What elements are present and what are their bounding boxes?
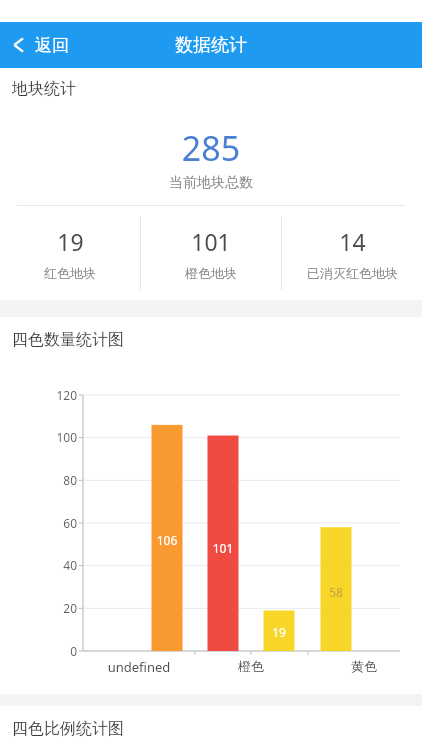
button[interactable]: 101 xyxy=(141,206,281,300)
staticText: 40 xyxy=(0,557,77,573)
button[interactable]: 14 xyxy=(282,206,422,300)
staticText: 地块统计 xyxy=(12,79,76,99)
staticText: 60 xyxy=(0,515,77,531)
staticText: 黄色 xyxy=(319,658,409,674)
staticText: 四色数量统计图 xyxy=(12,330,124,350)
staticText: 19 xyxy=(57,226,84,257)
staticText: 已消灭红色地块 xyxy=(307,265,398,281)
button[interactable]: 19 xyxy=(0,206,140,300)
staticText: 14 xyxy=(339,226,366,257)
staticText: 四色比例统计图 xyxy=(12,719,124,739)
staticText: 106 xyxy=(147,532,187,548)
staticText: 19 xyxy=(259,624,299,640)
staticText: 100 xyxy=(0,429,77,445)
staticText: 120 xyxy=(0,387,77,403)
staticText: undefined xyxy=(94,658,184,676)
staticText: 返回 xyxy=(35,35,69,56)
button[interactable]: Back xyxy=(0,22,85,68)
staticText: 数据统计 xyxy=(175,34,247,57)
staticText: 当前地块总数 xyxy=(0,174,422,192)
other: Back xyxy=(11,34,26,56)
staticText: 101 xyxy=(191,226,231,257)
staticText: 20 xyxy=(0,600,77,616)
staticText: 285 xyxy=(0,125,422,171)
staticText: 红色地块 xyxy=(44,265,96,281)
staticText: 101 xyxy=(203,540,243,556)
staticText: 0 xyxy=(0,643,77,659)
staticText: 80 xyxy=(0,472,77,488)
staticText: 58 xyxy=(316,584,356,600)
staticText: 橙色 xyxy=(206,658,296,674)
staticText: 橙色地块 xyxy=(185,265,237,281)
